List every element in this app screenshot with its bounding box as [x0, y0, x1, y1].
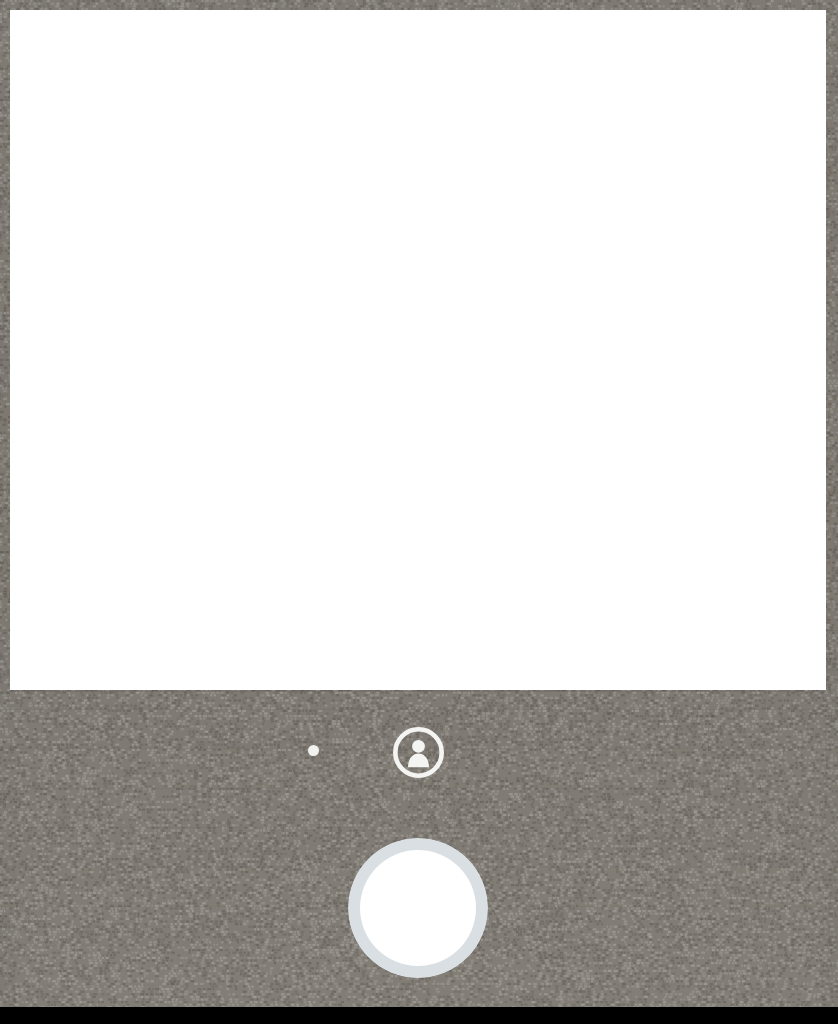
button[interactable]: Account [383, 717, 454, 788]
button[interactable]: Shutter [348, 838, 488, 978]
button[interactable]: Status indicator [300, 737, 327, 764]
